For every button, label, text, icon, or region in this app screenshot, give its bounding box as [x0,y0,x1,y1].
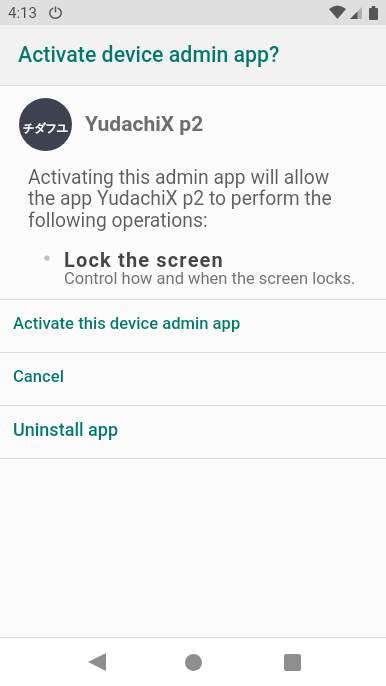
staticText: Activating this admin app will allow the… [28,166,332,232]
staticText: チダフユ [23,121,69,135]
button[interactable]: Activate this device admin app [0,300,386,352]
staticText: Control how and when the screen locks. [64,269,356,288]
staticText: Lock the screen [64,248,224,271]
staticText: Cancel [13,367,64,386]
staticText: Activate this device admin app [13,314,241,333]
staticText: 4:13 [8,4,37,22]
staticText: YudachiX p2 [85,112,204,137]
button[interactable]: Uninstall app [0,406,386,458]
button[interactable] [169,638,217,686]
staticText: Uninstall app [13,419,119,440]
staticText: Activate device admin app? [18,42,280,67]
button[interactable] [268,638,316,686]
button[interactable]: Cancel [0,353,386,405]
button[interactable] [73,638,121,686]
